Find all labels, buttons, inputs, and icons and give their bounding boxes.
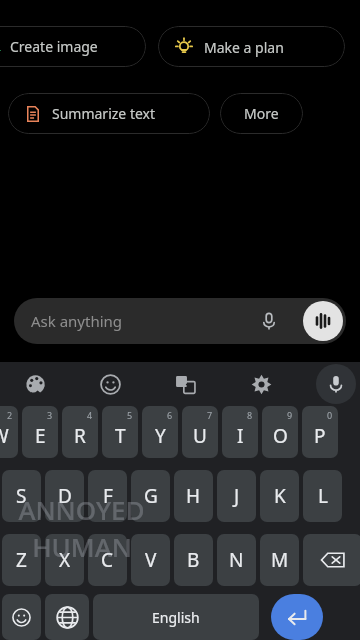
button[interactable]: D bbox=[45, 470, 84, 522]
staticText: G bbox=[144, 483, 158, 509]
button[interactable]: G bbox=[131, 470, 170, 522]
staticText: M bbox=[271, 547, 289, 573]
staticText: Create image bbox=[10, 37, 98, 56]
staticText: D bbox=[58, 483, 72, 509]
button[interactable]: Enter bbox=[271, 594, 323, 640]
button[interactable]: Themes bbox=[15, 364, 55, 404]
button[interactable]: Voice input bbox=[254, 306, 284, 336]
staticText: L bbox=[318, 483, 328, 509]
staticText: H bbox=[186, 483, 201, 509]
staticText: ANNOYED bbox=[18, 492, 145, 527]
button[interactable]: Emoji bbox=[90, 364, 130, 404]
button[interactable]: Settings bbox=[241, 364, 281, 404]
staticText: U bbox=[193, 423, 207, 449]
button[interactable]: Z bbox=[2, 534, 41, 586]
staticText: Z bbox=[16, 547, 27, 573]
staticText: HUMAN bbox=[32, 529, 132, 564]
staticText: 8 bbox=[247, 409, 253, 421]
staticText: Ask anything bbox=[31, 311, 123, 331]
button[interactable]: Summarize text bbox=[8, 93, 210, 134]
staticText: 4 bbox=[87, 409, 93, 421]
button[interactable]: English bbox=[93, 594, 259, 640]
button[interactable]: N bbox=[217, 534, 256, 586]
button[interactable]: Voice typing bbox=[316, 364, 356, 404]
button[interactable]: Backspace bbox=[303, 534, 360, 586]
button[interactable]: Live voice bbox=[303, 301, 343, 341]
button[interactable]: 8 bbox=[222, 406, 258, 458]
button[interactable]: B bbox=[174, 534, 213, 586]
button[interactable]: 0 bbox=[302, 406, 338, 458]
button[interactable]: 2 bbox=[0, 406, 18, 458]
staticText: 0 bbox=[327, 409, 333, 421]
staticText: V bbox=[145, 547, 157, 573]
button[interactable]: X bbox=[45, 534, 84, 586]
button[interactable]: M bbox=[260, 534, 299, 586]
button[interactable]: More bbox=[220, 93, 303, 134]
button[interactable]: 3 bbox=[22, 406, 58, 458]
button[interactable]: C bbox=[88, 534, 127, 586]
staticText: 3 bbox=[47, 409, 53, 421]
staticText: R bbox=[74, 423, 86, 449]
staticText: 9 bbox=[287, 409, 293, 421]
button[interactable]: 6 bbox=[142, 406, 178, 458]
staticText: W bbox=[0, 423, 9, 449]
staticText: Summarize text bbox=[52, 104, 156, 123]
staticText: 7 bbox=[207, 409, 213, 421]
staticText: B bbox=[187, 547, 200, 573]
button[interactable]: Make a plan bbox=[158, 26, 345, 67]
staticText: 2 bbox=[7, 409, 13, 421]
staticText: X bbox=[59, 547, 71, 573]
staticText: English bbox=[152, 608, 200, 627]
button[interactable]: H bbox=[174, 470, 213, 522]
staticText: K bbox=[274, 483, 286, 509]
button[interactable]: Translate bbox=[165, 364, 205, 404]
button[interactable]: 5 bbox=[102, 406, 138, 458]
staticText: Make a plan bbox=[204, 38, 284, 57]
button[interactable]: Emoji bbox=[2, 594, 41, 640]
button[interactable]: Create image bbox=[0, 26, 146, 67]
button[interactable]: Ask anything bbox=[14, 298, 346, 344]
button[interactable]: K bbox=[260, 470, 299, 522]
button[interactable]: J bbox=[217, 470, 256, 522]
staticText: 6 bbox=[167, 409, 173, 421]
button[interactable]: 4 bbox=[62, 406, 98, 458]
staticText: J bbox=[234, 483, 240, 509]
staticText: More bbox=[244, 104, 279, 123]
button[interactable]: L bbox=[303, 470, 342, 522]
staticText: F bbox=[103, 483, 113, 509]
button[interactable]: Change language bbox=[45, 594, 89, 640]
staticText: C bbox=[101, 547, 114, 573]
button[interactable]: 7 bbox=[182, 406, 218, 458]
button[interactable]: S bbox=[2, 470, 41, 522]
button[interactable]: V bbox=[131, 534, 170, 586]
staticText: O bbox=[273, 423, 288, 449]
staticText: T bbox=[115, 423, 126, 449]
button[interactable]: 9 bbox=[262, 406, 298, 458]
staticText: N bbox=[229, 547, 244, 573]
staticText: I bbox=[237, 423, 244, 449]
staticText: 5 bbox=[127, 409, 133, 421]
staticText: Y bbox=[155, 423, 166, 449]
staticText: P bbox=[314, 423, 326, 449]
button[interactable]: F bbox=[88, 470, 127, 522]
staticText: E bbox=[35, 423, 46, 449]
staticText: S bbox=[16, 483, 27, 509]
